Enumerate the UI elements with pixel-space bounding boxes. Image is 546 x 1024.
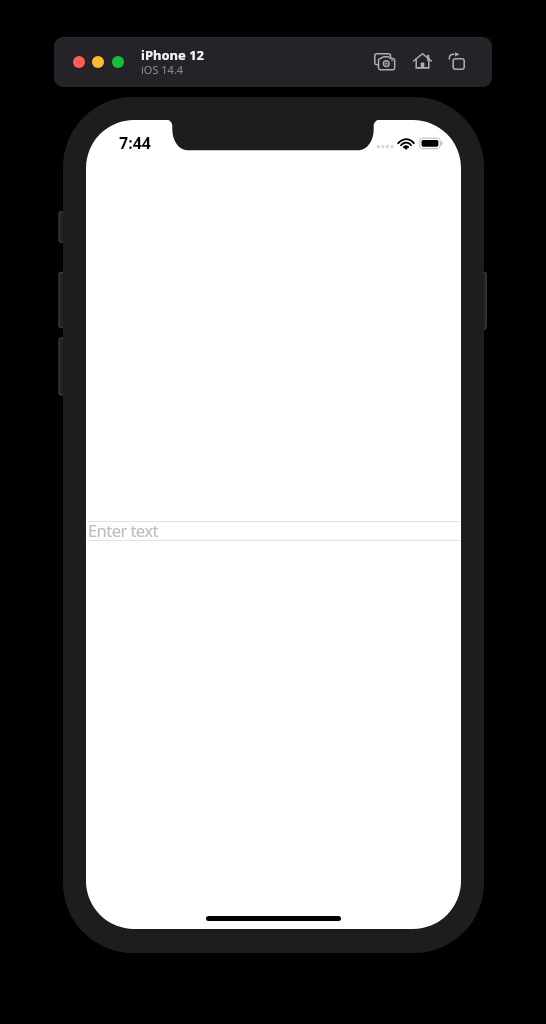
button[interactable]: Maximize [112, 56, 124, 68]
staticText: Enter text [88, 519, 158, 539]
staticText: 7:44 [119, 132, 151, 154]
button[interactable]: Enter text field [87, 521, 460, 541]
button[interactable]: Home [410, 49, 434, 73]
button[interactable]: Close [73, 56, 85, 68]
button[interactable]: Minimize [92, 56, 104, 68]
staticText: iOS 14.4 [141, 62, 184, 77]
button[interactable]: Screenshot [372, 49, 396, 73]
button[interactable]: Rotate [445, 49, 469, 73]
staticText: iPhone 12 [141, 46, 204, 64]
